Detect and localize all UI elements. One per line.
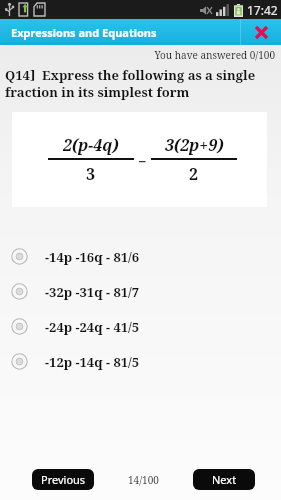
staticText: -12p -14q - 81/5 (45, 353, 140, 371)
staticText: Previous (41, 472, 86, 487)
staticText: Expressions and Equations (11, 25, 157, 40)
button[interactable]: -24p -24q - 41/5 (0, 309, 281, 344)
button[interactable]: Next (193, 469, 255, 490)
staticText: − (138, 151, 147, 171)
staticText: 3(2p+9) (165, 134, 224, 156)
staticText: 14/100 (128, 473, 159, 487)
staticText: -24p -24q - 41/5 (45, 318, 140, 336)
staticText: 2(p−4q) (63, 134, 119, 156)
staticText: Next (212, 472, 237, 487)
button[interactable]: -14p -16q - 81/6 (0, 239, 281, 274)
staticText: You have answered 0/100 (0, 48, 275, 62)
button[interactable]: -32p -31q - 81/7 (0, 274, 281, 309)
staticText: 17:42 (247, 2, 278, 18)
staticText: -32p -31q - 81/7 (45, 283, 140, 301)
button[interactable]: Close (241, 19, 281, 45)
button[interactable]: -12p -14q - 81/5 (0, 344, 281, 379)
staticText: 3 (86, 163, 96, 185)
button[interactable]: Previous (32, 469, 94, 490)
staticText: -14p -16q - 81/6 (45, 248, 140, 266)
staticText: 2 (189, 163, 199, 185)
staticText: Q14] Express the following as a single f… (5, 66, 276, 101)
